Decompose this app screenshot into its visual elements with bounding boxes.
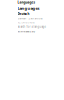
staticText: Deutsch <box>17 12 29 16</box>
staticText: Languages <box>17 5 39 11</box>
staticText: Search for a language <box>17 25 46 29</box>
staticText: ALL LANGUAGES <box>17 21 34 24</box>
staticText: en.wikipedia.org <box>17 30 34 33</box>
staticText: German · 2.9M articles <box>17 17 42 20</box>
staticText: Languages <box>17 0 35 4</box>
